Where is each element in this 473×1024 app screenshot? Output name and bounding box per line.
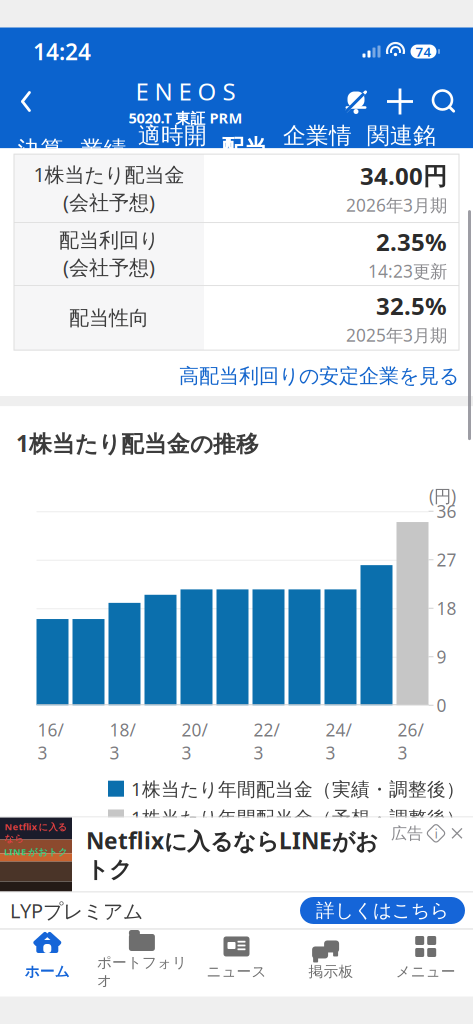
staticText: 16/3 — [37, 718, 63, 764]
staticText: 業績 — [80, 136, 126, 163]
staticText: 1株当たり年間配当金（実績・調整後） — [131, 776, 465, 801]
staticText: (会社予想) — [63, 254, 155, 280]
staticText: 0 — [436, 694, 446, 717]
button[interactable]: 検索 — [427, 81, 461, 121]
staticText: i — [434, 824, 437, 842]
button[interactable]: 掲示板 — [284, 929, 378, 985]
staticText: 高配当利回りの安定企業を見る — [179, 364, 459, 388]
staticText: 配当利回り — [59, 228, 159, 253]
staticText: ホーム — [25, 962, 70, 980]
staticText: Netflix に入るなら — [4, 820, 67, 844]
button[interactable]: 詳しくはこちら — [300, 897, 465, 924]
staticText: 34.00円 — [360, 160, 447, 192]
staticText: 18/3 — [109, 718, 135, 764]
staticText: メニュー — [396, 962, 456, 980]
button[interactable]: 戻る — [4, 79, 48, 123]
staticText: E N E O S — [135, 75, 235, 107]
staticText: 2026年3月期 — [346, 194, 447, 217]
button[interactable]: 決算 — [29, 127, 75, 171]
staticText: 27 — [436, 548, 456, 571]
staticText: 9 — [436, 645, 446, 668]
staticText: 1株当たり配当金の推移 — [16, 428, 259, 458]
button[interactable]: 関連銘柄 — [359, 127, 443, 171]
staticText: 14:24 — [33, 36, 91, 66]
button[interactable]: メニュー — [378, 929, 473, 985]
staticText: 詳しくはこちら — [316, 899, 449, 922]
staticText: 関連銘柄 — [367, 122, 436, 177]
button[interactable]: 配当 — [213, 127, 275, 171]
staticText: 配当 — [221, 134, 267, 162]
staticText: 配当性向 — [69, 306, 149, 330]
staticText: 1株当たり年間配当金（予想・調整後） — [131, 805, 465, 830]
button[interactable]: 広告情報 — [427, 824, 445, 842]
staticText: 決算 — [17, 136, 63, 163]
staticText: LYPプレミアム — [10, 897, 143, 924]
staticText: ニュース — [206, 962, 266, 980]
button[interactable]: ホーム — [0, 929, 95, 985]
staticText: 2025年3月期 — [346, 324, 447, 347]
button[interactable]: 高配当利回りの安定企業を見る — [0, 364, 473, 388]
button[interactable]: ニュース — [189, 929, 284, 985]
staticText: ポートフォリオ — [97, 953, 187, 989]
staticText: 2.35% — [376, 226, 447, 258]
staticText: 5020.T 東証 PRM — [128, 108, 242, 128]
staticText: Netflixに入るならLINEがおトク — [86, 825, 378, 884]
staticText: 74 — [415, 43, 431, 60]
staticText: 企業情報 — [283, 122, 352, 177]
staticText: 32.5% — [376, 290, 447, 322]
staticText: 22/3 — [253, 718, 279, 764]
staticText: 掲示板 — [309, 962, 354, 980]
staticText: 広告 — [391, 823, 423, 843]
button[interactable]: 企業情報 — [275, 127, 359, 171]
staticText: 18 — [436, 597, 456, 620]
button[interactable]: ポートフォリオ — [95, 929, 189, 985]
staticText: 適時開示 — [138, 122, 207, 177]
staticText: 1株当たり配当金 — [33, 161, 184, 188]
button[interactable]: 適時開示 — [131, 127, 213, 171]
staticText: 20/3 — [181, 718, 207, 764]
button[interactable]: Netflix に入るなら — [0, 817, 391, 891]
staticText: (会社予想) — [63, 189, 155, 215]
button[interactable]: 追加 — [383, 81, 417, 121]
staticText: 36 — [436, 500, 456, 523]
staticText: 26/3 — [397, 718, 423, 764]
staticText: 14:23更新 — [368, 260, 447, 283]
staticText: (円) — [429, 484, 456, 507]
button[interactable]: 業績 — [75, 127, 131, 171]
button[interactable]: 閉じる — [449, 825, 465, 841]
staticText: LINE がおトク — [4, 845, 68, 858]
staticText: 24/3 — [325, 718, 351, 764]
button[interactable]: 通知オフ — [339, 81, 373, 121]
